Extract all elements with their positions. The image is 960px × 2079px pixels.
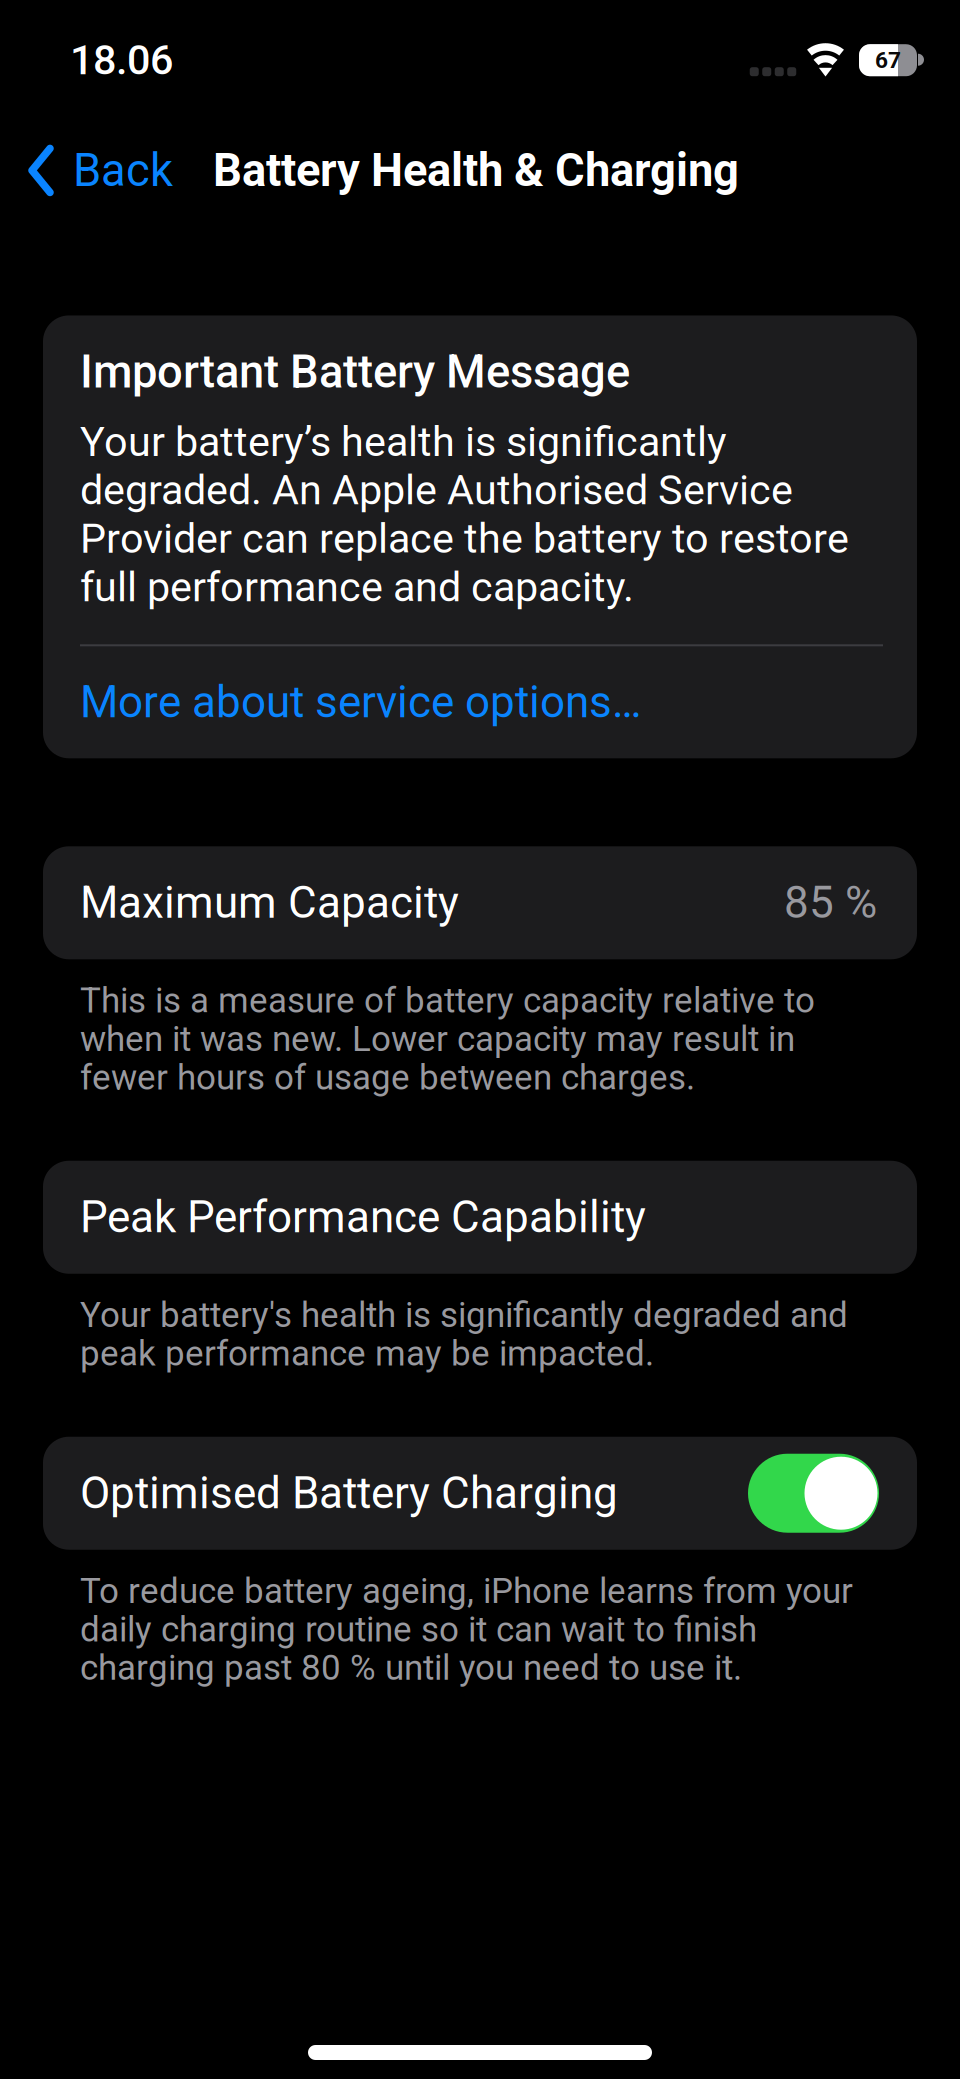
staticText: Important Battery Message — [80, 345, 630, 398]
staticText: To reduce battery ageing, iPhone learns … — [80, 1572, 853, 1687]
staticText: Back — [73, 144, 173, 197]
staticText: Your battery’s health is significantly d… — [80, 418, 849, 611]
staticText: Your battery's health is significantly d… — [80, 1296, 848, 1373]
staticText: 18.06 — [70, 36, 173, 84]
staticText: This is a measure of battery capacity re… — [80, 981, 815, 1097]
staticText: 85 % — [784, 877, 877, 929]
staticText: Peak Performance Capability — [80, 1191, 646, 1243]
button[interactable]: Peak Performance Capability — [0, 1161, 960, 1274]
button[interactable]: Back — [0, 124, 185, 216]
staticText: 67 — [875, 47, 901, 73]
staticText: Optimised Battery Charging — [80, 1467, 618, 1519]
staticText: Maximum Capacity — [80, 877, 459, 929]
staticText: More about service options… — [80, 676, 641, 728]
staticText: Battery Health & Charging — [213, 144, 739, 197]
button[interactable]: More about service options… — [80, 678, 883, 726]
button[interactable]: Maximum Capacity — [0, 846, 960, 959]
button[interactable]: Optimised Battery Charging — [0, 1437, 960, 1550]
